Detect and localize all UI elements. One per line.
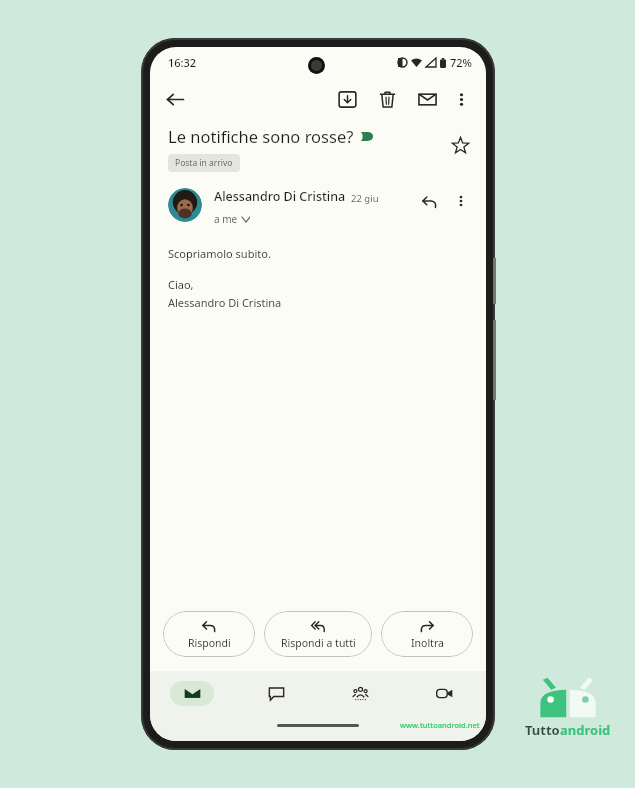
staticText: 16:32 xyxy=(168,55,197,70)
button[interactable]: Meet xyxy=(402,671,486,715)
button[interactable]: Inoltra xyxy=(381,611,473,657)
button[interactable]: Delete xyxy=(372,84,402,114)
staticText: Inoltra xyxy=(411,636,444,650)
button[interactable]: a me xyxy=(214,212,250,226)
button[interactable]: More options xyxy=(446,84,476,114)
staticText: Scopriamolo subito. xyxy=(168,246,271,261)
staticText: Alessandro Di Cristina xyxy=(168,295,282,310)
button[interactable]: Rispondi xyxy=(163,611,255,657)
staticText: Rispondi a tutti xyxy=(281,636,356,650)
staticText: 22 giu xyxy=(351,192,379,205)
staticText: www.tuttoandroid.net xyxy=(400,720,480,730)
button[interactable]: Spaces xyxy=(318,671,402,715)
button[interactable]: Star xyxy=(446,131,474,159)
staticText: Le notifiche sono rosse? xyxy=(168,125,354,147)
staticText: Ciao, xyxy=(168,277,194,292)
button[interactable]: Chat xyxy=(234,671,318,715)
staticText: a me xyxy=(214,212,238,226)
button[interactable]: Rispondi a tutti xyxy=(264,611,372,657)
button[interactable]: Posta in arrivo xyxy=(168,154,240,172)
button[interactable]: Mark unread xyxy=(412,84,442,114)
button[interactable]: Back xyxy=(160,84,190,114)
staticText: Alessandro Di Cristina xyxy=(214,188,346,205)
staticText: Tutto xyxy=(525,721,560,739)
button[interactable]: Archive xyxy=(332,84,362,114)
button[interactable]: Mail xyxy=(150,671,234,715)
staticText: android xyxy=(560,721,611,739)
staticText: Posta in arrivo xyxy=(175,157,233,169)
staticText: 72% xyxy=(450,55,472,70)
button[interactable]: Reply xyxy=(416,188,442,214)
button[interactable]: More options xyxy=(448,188,474,214)
staticText: Rispondi xyxy=(188,636,231,650)
button[interactable]: Sender avatar xyxy=(168,188,202,222)
